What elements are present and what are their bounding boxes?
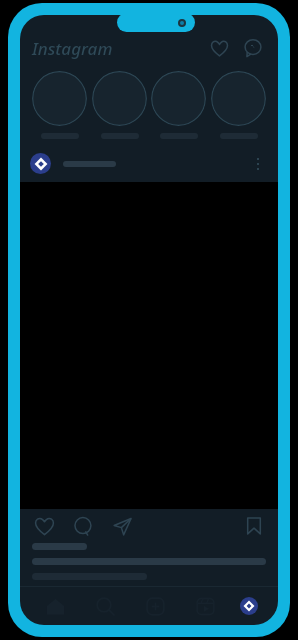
button[interactable] <box>32 71 87 139</box>
button[interactable]: More options <box>248 154 268 174</box>
button[interactable] <box>151 71 206 139</box>
button[interactable]: Profile <box>30 153 51 174</box>
button[interactable]: Share <box>110 514 134 538</box>
button[interactable]: Messenger <box>240 35 266 61</box>
button[interactable]: Like <box>32 514 56 538</box>
button[interactable]: Comment <box>71 514 95 538</box>
button[interactable] <box>92 71 147 139</box>
button[interactable]: Notifications <box>206 35 232 61</box>
button[interactable]: Profile <box>240 597 258 615</box>
staticText: Instagram <box>32 37 113 60</box>
button[interactable]: Save <box>242 514 266 538</box>
button[interactable] <box>211 71 266 139</box>
